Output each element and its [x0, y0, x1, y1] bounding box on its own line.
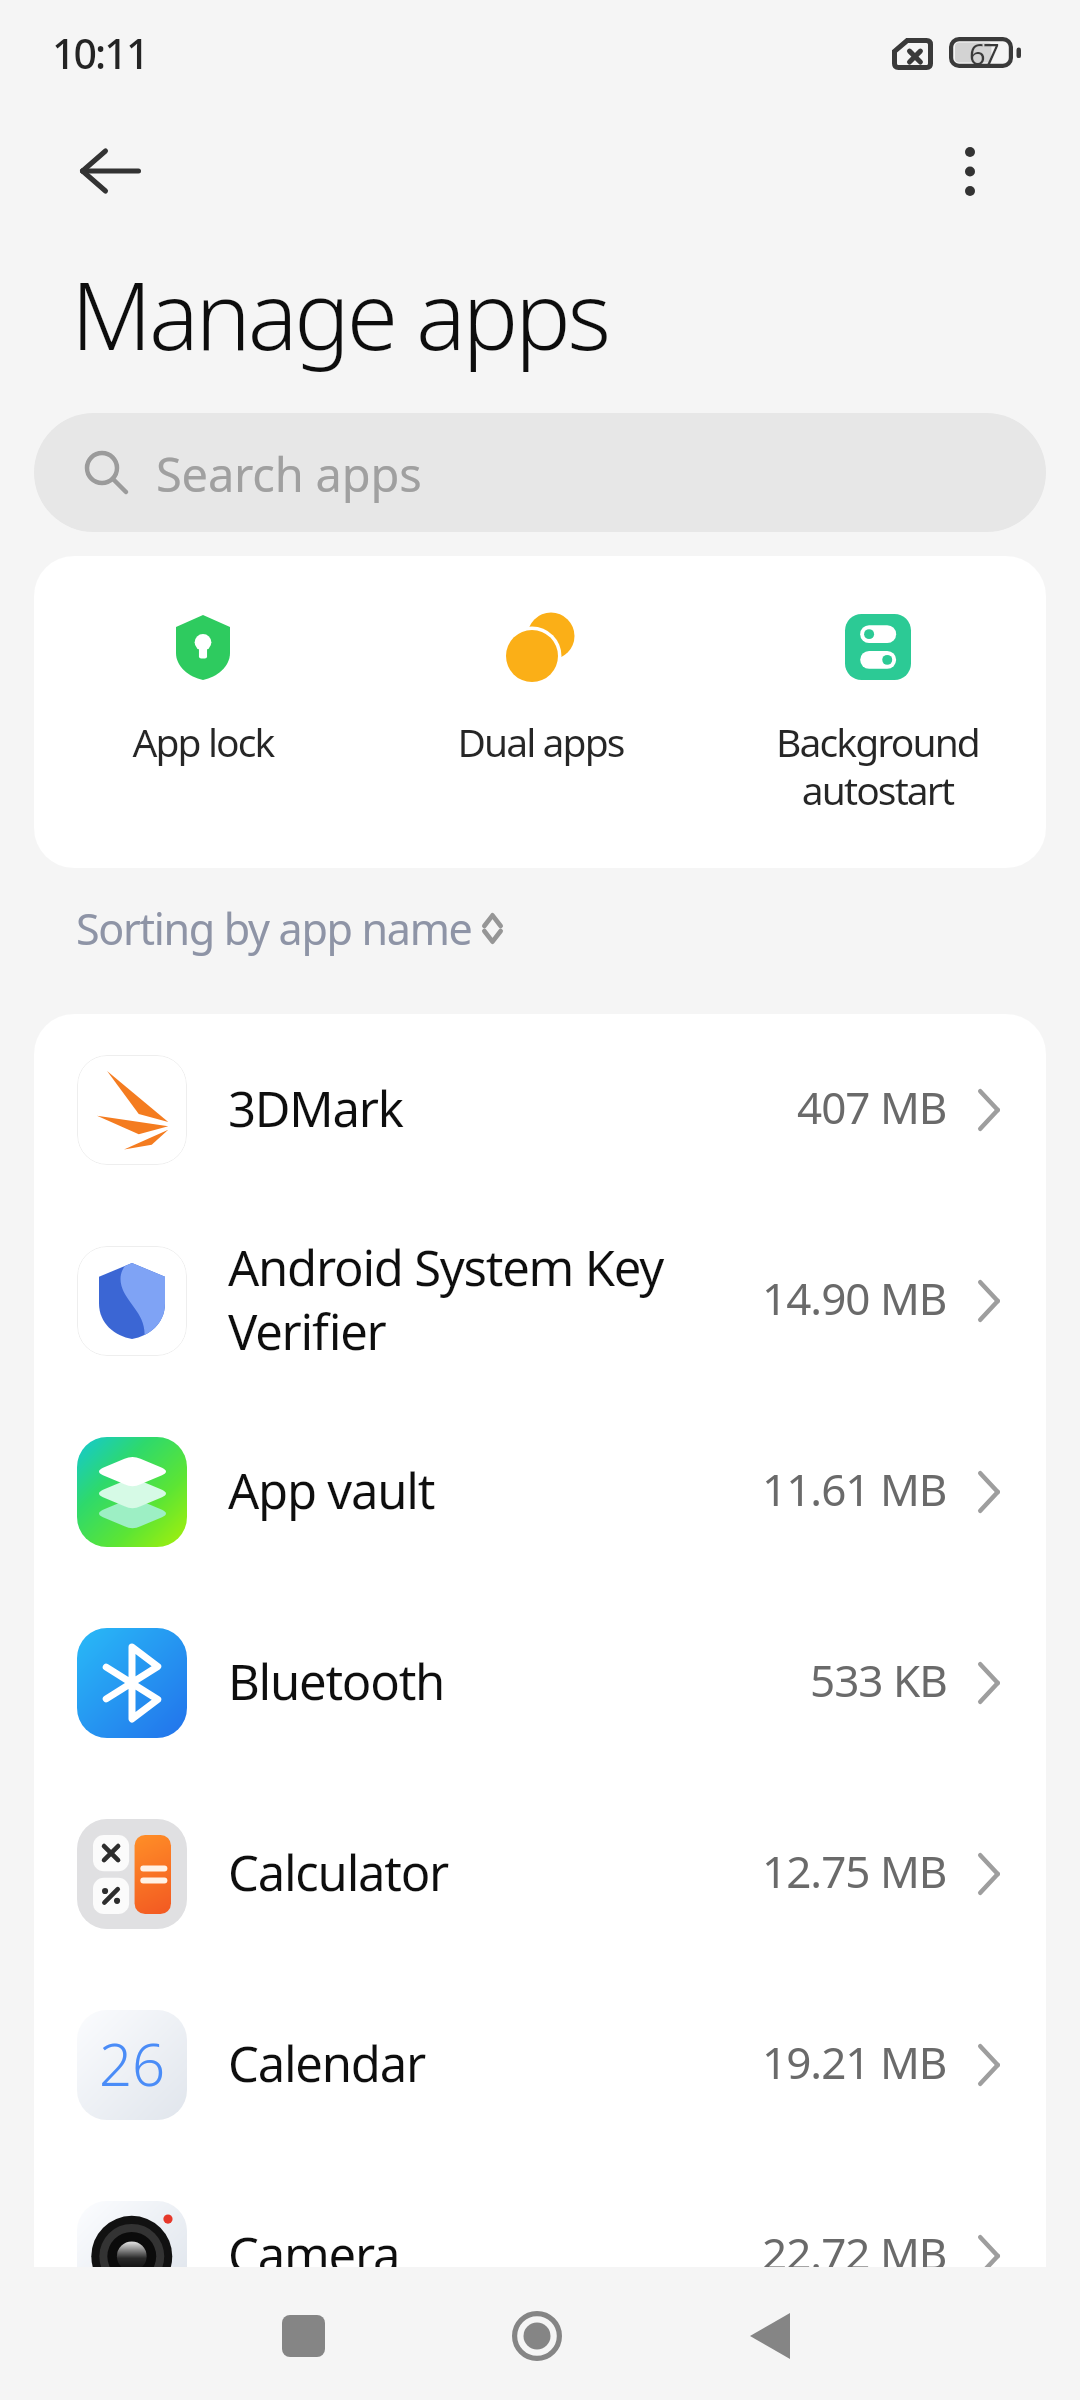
staticText: 10:11	[52, 25, 148, 81]
staticText: Camera	[228, 2221, 750, 2267]
staticText: App lock	[34, 715, 372, 768]
staticText: 533 KB	[810, 1650, 947, 1710]
staticText: Android System Key Verifier	[228, 1234, 750, 1365]
button[interactable]: Android System Key Verifier	[34, 1205, 1046, 1396]
staticText: 67	[969, 34, 997, 73]
button[interactable]: Background autostart	[709, 556, 1046, 868]
button[interactable]: Camera	[34, 2160, 1046, 2267]
button[interactable]: Search apps	[34, 413, 1046, 532]
button[interactable]: Calculator	[34, 1778, 1046, 1969]
staticText: App vault	[228, 1457, 750, 1524]
button[interactable]: Home	[424, 2268, 649, 2400]
staticText: 12.75 MB	[762, 1841, 947, 1901]
staticText: 407 MB	[797, 1077, 947, 1137]
staticText: 22.72 MB	[762, 2223, 947, 2267]
staticText: Calculator	[228, 1839, 750, 1906]
button[interactable]: 26	[34, 1969, 1046, 2160]
button[interactable]: App lock	[34, 556, 372, 868]
button[interactable]: App vault	[34, 1396, 1046, 1587]
staticText: 3DMark	[228, 1075, 785, 1142]
button[interactable]: Back	[658, 2268, 883, 2400]
staticText: Bluetooth	[228, 1648, 798, 1715]
button[interactable]: 3DMark	[34, 1014, 1046, 1205]
staticText: 14.90 MB	[762, 1268, 947, 1328]
button[interactable]: Recent apps	[190, 2268, 415, 2400]
staticText: Search apps	[156, 442, 422, 506]
staticText: 19.21 MB	[762, 2032, 947, 2092]
button[interactable]: More options	[918, 119, 1022, 223]
staticText: Manage apps	[71, 251, 608, 378]
button[interactable]: Bluetooth	[34, 1587, 1046, 1778]
staticText: 26	[99, 2024, 166, 2103]
button[interactable]: Back	[58, 119, 162, 223]
button[interactable]: Dual apps	[372, 556, 709, 868]
staticText: Calendar	[228, 2030, 750, 2097]
staticText: 11.61 MB	[762, 1459, 947, 1519]
button[interactable]: Sorting by app name	[76, 893, 503, 963]
staticText: Sorting by app name	[76, 899, 472, 958]
staticText: Background autostart	[709, 715, 1046, 816]
staticText: Dual apps	[372, 715, 709, 768]
